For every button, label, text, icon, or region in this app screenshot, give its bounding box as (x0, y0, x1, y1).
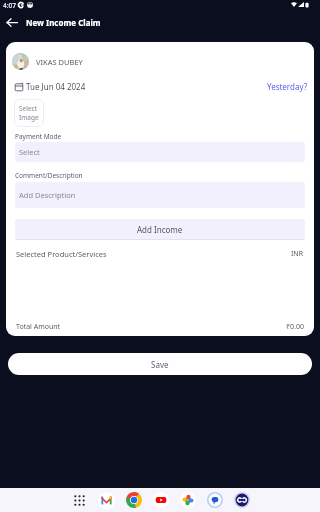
staticText: New Income Claim (26, 17, 101, 28)
button[interactable]: Select (15, 142, 305, 162)
staticText: Total Amount (16, 322, 61, 332)
staticText: 4:07 (3, 1, 16, 10)
staticText: Add Description (19, 190, 76, 200)
button[interactable]: Yesterday? (267, 81, 308, 92)
button[interactable]: Add Income (15, 219, 305, 239)
staticText: Tue Jun 04 2024 (26, 81, 86, 92)
staticText: Select Image (19, 104, 39, 122)
button[interactable]: Photos (174, 488, 201, 512)
staticText: Save (151, 359, 169, 370)
staticText: INR (291, 249, 304, 259)
button[interactable]: Add Description (15, 182, 305, 208)
staticText: ₹0.00 (286, 322, 304, 332)
button[interactable]: Gmail (93, 488, 120, 512)
button[interactable]: Duo (228, 488, 255, 512)
staticText: VIKAS DUBEY (36, 57, 83, 67)
button[interactable]: Chrome (120, 488, 147, 512)
staticText: Comment/Description (15, 171, 83, 180)
button[interactable]: Save (8, 353, 312, 375)
button[interactable]: YouTube (147, 488, 174, 512)
staticText: Yesterday? (267, 81, 308, 92)
staticText: Add Income (137, 224, 183, 235)
button[interactable]: Select Image (14, 99, 44, 127)
button[interactable]: Apps (66, 488, 93, 512)
staticText: Payment Mode (15, 132, 62, 141)
button[interactable]: Back (2, 13, 22, 32)
button[interactable]: Messages (201, 488, 228, 512)
staticText: Select (19, 147, 40, 157)
staticText: Selected Product/Services (16, 249, 107, 259)
